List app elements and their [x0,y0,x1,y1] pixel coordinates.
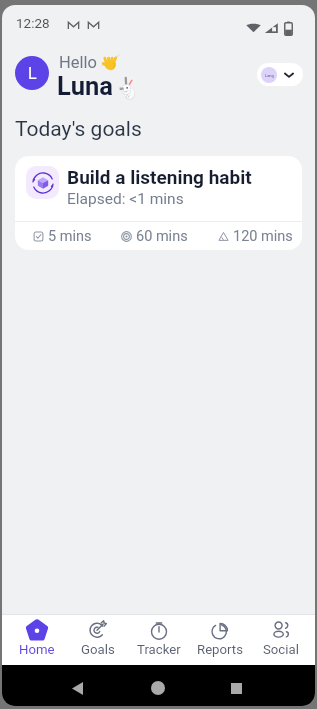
staticText: Social [263,642,299,657]
button[interactable]: Social [250,615,311,665]
button[interactable]: Tracker [128,615,189,665]
staticText: 120 mins [233,228,293,245]
button[interactable]: Recents [218,670,254,706]
button[interactable]: Goals [67,615,128,665]
staticText: Reports [197,642,243,657]
button[interactable]: Build a listening habit [15,156,302,250]
staticText: Elapsed: <1 mins [67,190,184,208]
staticText: Home [19,642,55,657]
staticText: Lang [265,73,274,78]
staticText: Today's goals [15,117,142,142]
staticText: Hello [59,53,97,72]
button[interactable]: Home [6,615,67,665]
button[interactable]: Profile [15,56,49,90]
staticText: 12:28 [16,15,50,31]
button[interactable]: Home [140,670,176,706]
staticText: Build a listening habit [67,166,252,188]
staticText: Luna [57,71,113,101]
staticText: Tracker [137,642,181,657]
button[interactable]: Back [59,670,95,706]
button[interactable]: Language [257,63,303,86]
staticText: Goals [81,642,115,657]
button[interactable]: Reports [189,615,250,665]
staticText: 60 mins [136,228,188,245]
staticText: 5 mins [48,228,92,245]
staticText: L [28,64,37,83]
